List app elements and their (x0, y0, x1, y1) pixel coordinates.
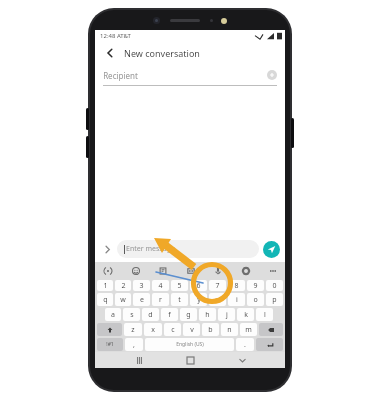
staticText: 9 (253, 281, 258, 291)
button[interactable]: 0 (266, 280, 283, 291)
button[interactable]: Stickers (156, 264, 169, 277)
staticText: d (148, 310, 153, 320)
staticText: 3 (139, 281, 144, 291)
button[interactable]: c (164, 323, 181, 336)
button[interactable]: Recipient (103, 65, 277, 85)
staticText: u (215, 295, 220, 305)
staticText: r (159, 295, 162, 305)
staticText: w (120, 295, 126, 305)
staticText: s (130, 310, 134, 320)
button[interactable]: Backspace (259, 323, 283, 336)
button[interactable]: z (124, 323, 142, 336)
button[interactable]: k (237, 308, 254, 321)
button[interactable]: Enter (256, 338, 283, 351)
staticText: m (245, 325, 252, 335)
button[interactable]: Microphone (211, 264, 224, 277)
button[interactable]: b (202, 323, 219, 336)
staticText: Recipient (103, 70, 138, 81)
staticText: e (140, 295, 144, 305)
staticText: b (208, 325, 213, 335)
button[interactable]: GIF (184, 264, 197, 277)
staticText: z (131, 325, 135, 335)
button[interactable]: u (209, 293, 226, 306)
button[interactable]: y (190, 293, 207, 306)
button[interactable]: 7 (209, 280, 226, 291)
button[interactable]: f (161, 308, 178, 321)
button[interactable]: More options (266, 264, 279, 277)
button[interactable]: g (180, 308, 197, 321)
staticText: y (197, 295, 201, 305)
staticText: 8 (234, 281, 239, 291)
button[interactable]: Shift (97, 323, 122, 336)
button[interactable]: p (266, 293, 283, 306)
button[interactable]: Back (103, 46, 117, 60)
staticText: k (244, 310, 248, 320)
staticText: n (227, 325, 232, 335)
button[interactable]: Voice typing (101, 264, 114, 277)
staticText: 4 (158, 281, 163, 291)
button[interactable]: 1 (97, 280, 113, 291)
button[interactable]: a (105, 308, 121, 321)
button[interactable]: 8 (228, 280, 245, 291)
button[interactable]: Home (182, 352, 198, 368)
staticText: 1 (103, 281, 108, 291)
staticText: i (236, 295, 238, 305)
button[interactable]: m (240, 323, 257, 336)
button[interactable]: i (228, 293, 245, 306)
staticText: New conversation (124, 47, 200, 59)
button[interactable]: r (152, 293, 169, 306)
staticText: h (205, 310, 210, 320)
button[interactable]: j (218, 308, 235, 321)
staticText: c (171, 325, 175, 335)
staticText: . (244, 340, 246, 350)
button[interactable]: Back (234, 352, 250, 368)
button[interactable]: 6 (190, 280, 207, 291)
staticText: q (103, 295, 108, 305)
button[interactable]: e (133, 293, 150, 306)
button[interactable]: Enter message (117, 240, 259, 258)
button[interactable]: x (144, 323, 162, 336)
button[interactable]: h (199, 308, 216, 321)
button[interactable]: 9 (247, 280, 264, 291)
staticText: 5 (177, 281, 182, 291)
button[interactable]: Recents (131, 352, 147, 368)
staticText: 12:48 AT&T (100, 32, 131, 40)
staticText: 0 (272, 281, 277, 291)
button[interactable]: Expand attachments (100, 242, 114, 256)
staticText: a (111, 310, 115, 320)
button[interactable]: v (183, 323, 200, 336)
staticText: English (US) (176, 341, 204, 348)
staticText: g (186, 310, 191, 320)
staticText: l (264, 310, 266, 320)
button[interactable]: !#1 (97, 338, 123, 351)
staticText: 6 (196, 281, 201, 291)
button[interactable]: 2 (115, 280, 131, 291)
button[interactable]: , (125, 338, 143, 351)
button[interactable]: 3 (133, 280, 150, 291)
button[interactable]: l (256, 308, 273, 321)
staticText: !#1 (106, 341, 114, 348)
button[interactable]: Emoji (129, 264, 142, 277)
button[interactable]: d (142, 308, 159, 321)
button[interactable]: q (97, 293, 113, 306)
button[interactable]: s (123, 308, 140, 321)
button[interactable]: w (115, 293, 131, 306)
button[interactable]: t (171, 293, 188, 306)
button[interactable]: 4 (152, 280, 169, 291)
button[interactable]: 5 (171, 280, 188, 291)
staticText: o (253, 295, 258, 305)
button[interactable]: Add recipient (267, 70, 277, 80)
staticText: 2 (121, 281, 126, 291)
button[interactable]: . (236, 338, 254, 351)
button[interactable]: Settings (239, 264, 252, 277)
button[interactable]: n (221, 323, 238, 336)
staticText: 7 (215, 281, 220, 291)
button[interactable]: English (US) (145, 338, 234, 351)
staticText: p (272, 295, 277, 305)
button[interactable]: o (247, 293, 264, 306)
button[interactable]: Send (263, 241, 280, 258)
staticText: Enter message (126, 244, 175, 254)
staticText: , (133, 340, 135, 350)
staticText: t (178, 295, 181, 305)
staticText: j (226, 310, 228, 320)
